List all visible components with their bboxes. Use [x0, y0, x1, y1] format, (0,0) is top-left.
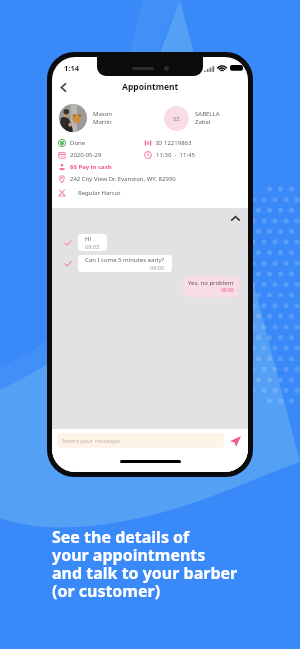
- staticText: Done: [70, 139, 86, 147]
- staticText: Can I come 5 minutes early?: [85, 256, 165, 264]
- button[interactable]: Collapse details: [228, 211, 242, 225]
- staticText: SABELLA: [195, 110, 220, 118]
- button[interactable]: Back: [55, 79, 71, 95]
- staticText: Hi: [85, 235, 91, 243]
- staticText: SZ: [173, 115, 180, 123]
- staticText: Zabel: [195, 118, 211, 126]
- staticText: 09:05: [150, 264, 165, 271]
- staticText: ID 12219863: [156, 139, 192, 147]
- staticText: See the details of your appointments and…: [52, 526, 238, 602]
- staticText: 242 City View Dr, Evanston, WY, 82930: [70, 175, 176, 183]
- staticText: Appointment: [122, 81, 179, 93]
- staticText: 11:30 - 11:45: [156, 151, 195, 159]
- staticText: 1:14: [64, 63, 79, 73]
- staticText: Regular Harcut: [78, 189, 121, 197]
- staticText: 09:06: [221, 287, 234, 294]
- staticText: Mason: [93, 110, 113, 118]
- staticText: 6$ Pay in cash: [70, 163, 112, 171]
- staticText: 09:03: [85, 243, 100, 250]
- staticText: Insert your message: [62, 437, 120, 445]
- staticText: 2020-05-29: [70, 151, 102, 159]
- staticText: Yes, no problem: [188, 279, 234, 287]
- button[interactable]: Send: [228, 434, 242, 448]
- staticText: Martin: [93, 118, 112, 126]
- button[interactable]: Insert your message: [57, 433, 224, 448]
